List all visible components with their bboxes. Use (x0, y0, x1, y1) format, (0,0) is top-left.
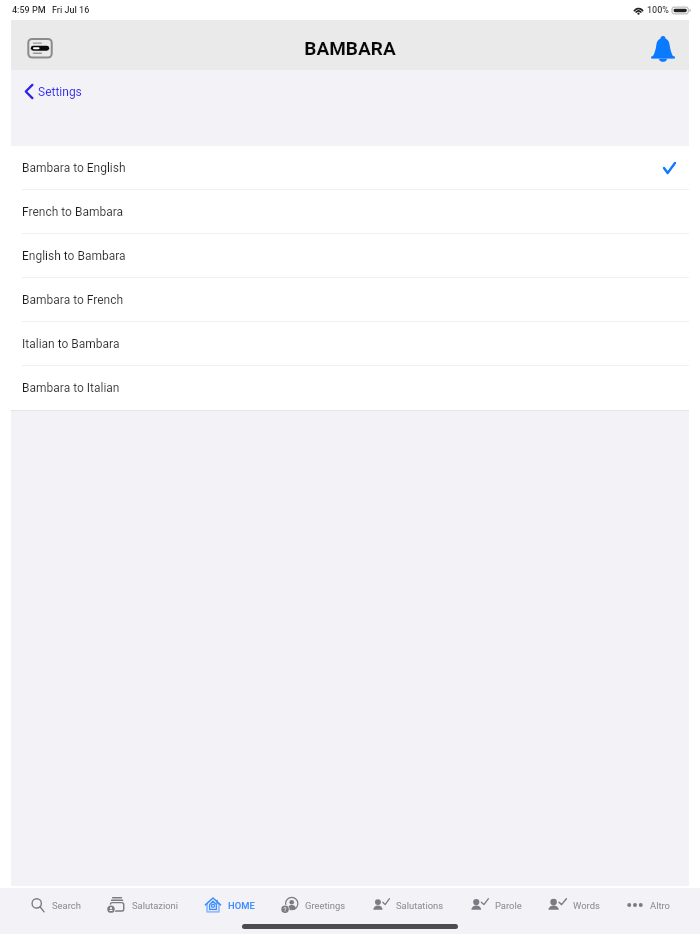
button[interactable]: Notifications (651, 35, 675, 64)
button[interactable]: English to Bambara (11, 234, 689, 278)
staticText: Altro (650, 900, 670, 911)
staticText: HOME (228, 900, 255, 911)
staticText: Salutations (396, 900, 444, 911)
staticText: Words (573, 900, 600, 911)
staticText: French to Bambara (22, 205, 124, 219)
button[interactable]: Parole (470, 894, 522, 916)
staticText: English to Bambara (22, 249, 126, 263)
staticText: Fri Jul 16 (52, 5, 90, 16)
button[interactable]: Altro (626, 894, 670, 916)
staticText: BAMBARA (304, 37, 396, 59)
button[interactable]: Italian to Bambara (11, 322, 689, 366)
button[interactable]: Settings (25, 84, 82, 99)
button[interactable]: Menu (23, 33, 52, 59)
button[interactable]: Greetings (281, 894, 346, 916)
button[interactable]: French to Bambara (11, 190, 689, 234)
button[interactable]: Words (547, 894, 600, 916)
button[interactable]: Salutations (372, 894, 444, 916)
button[interactable]: Bambara to French (11, 278, 689, 322)
staticText: 100% (647, 5, 669, 16)
staticText: 4:59 PM (12, 5, 46, 16)
staticText: Salutazioni (132, 900, 179, 911)
staticText: Bambara to Italian (22, 381, 120, 395)
staticText: Greetings (305, 900, 346, 911)
button[interactable]: Bambara to English (11, 146, 689, 190)
staticText: Bambara to English (22, 161, 126, 175)
button[interactable]: HOME (204, 894, 255, 916)
button[interactable]: Salutazioni (107, 894, 179, 916)
button[interactable]: Search (30, 894, 81, 916)
staticText: Italian to Bambara (22, 337, 120, 351)
button[interactable]: Bambara to Italian (11, 366, 689, 410)
staticText: Settings (38, 85, 82, 99)
staticText: Parole (495, 900, 522, 911)
staticText: Search (52, 900, 81, 911)
staticText: Bambara to French (22, 293, 124, 307)
